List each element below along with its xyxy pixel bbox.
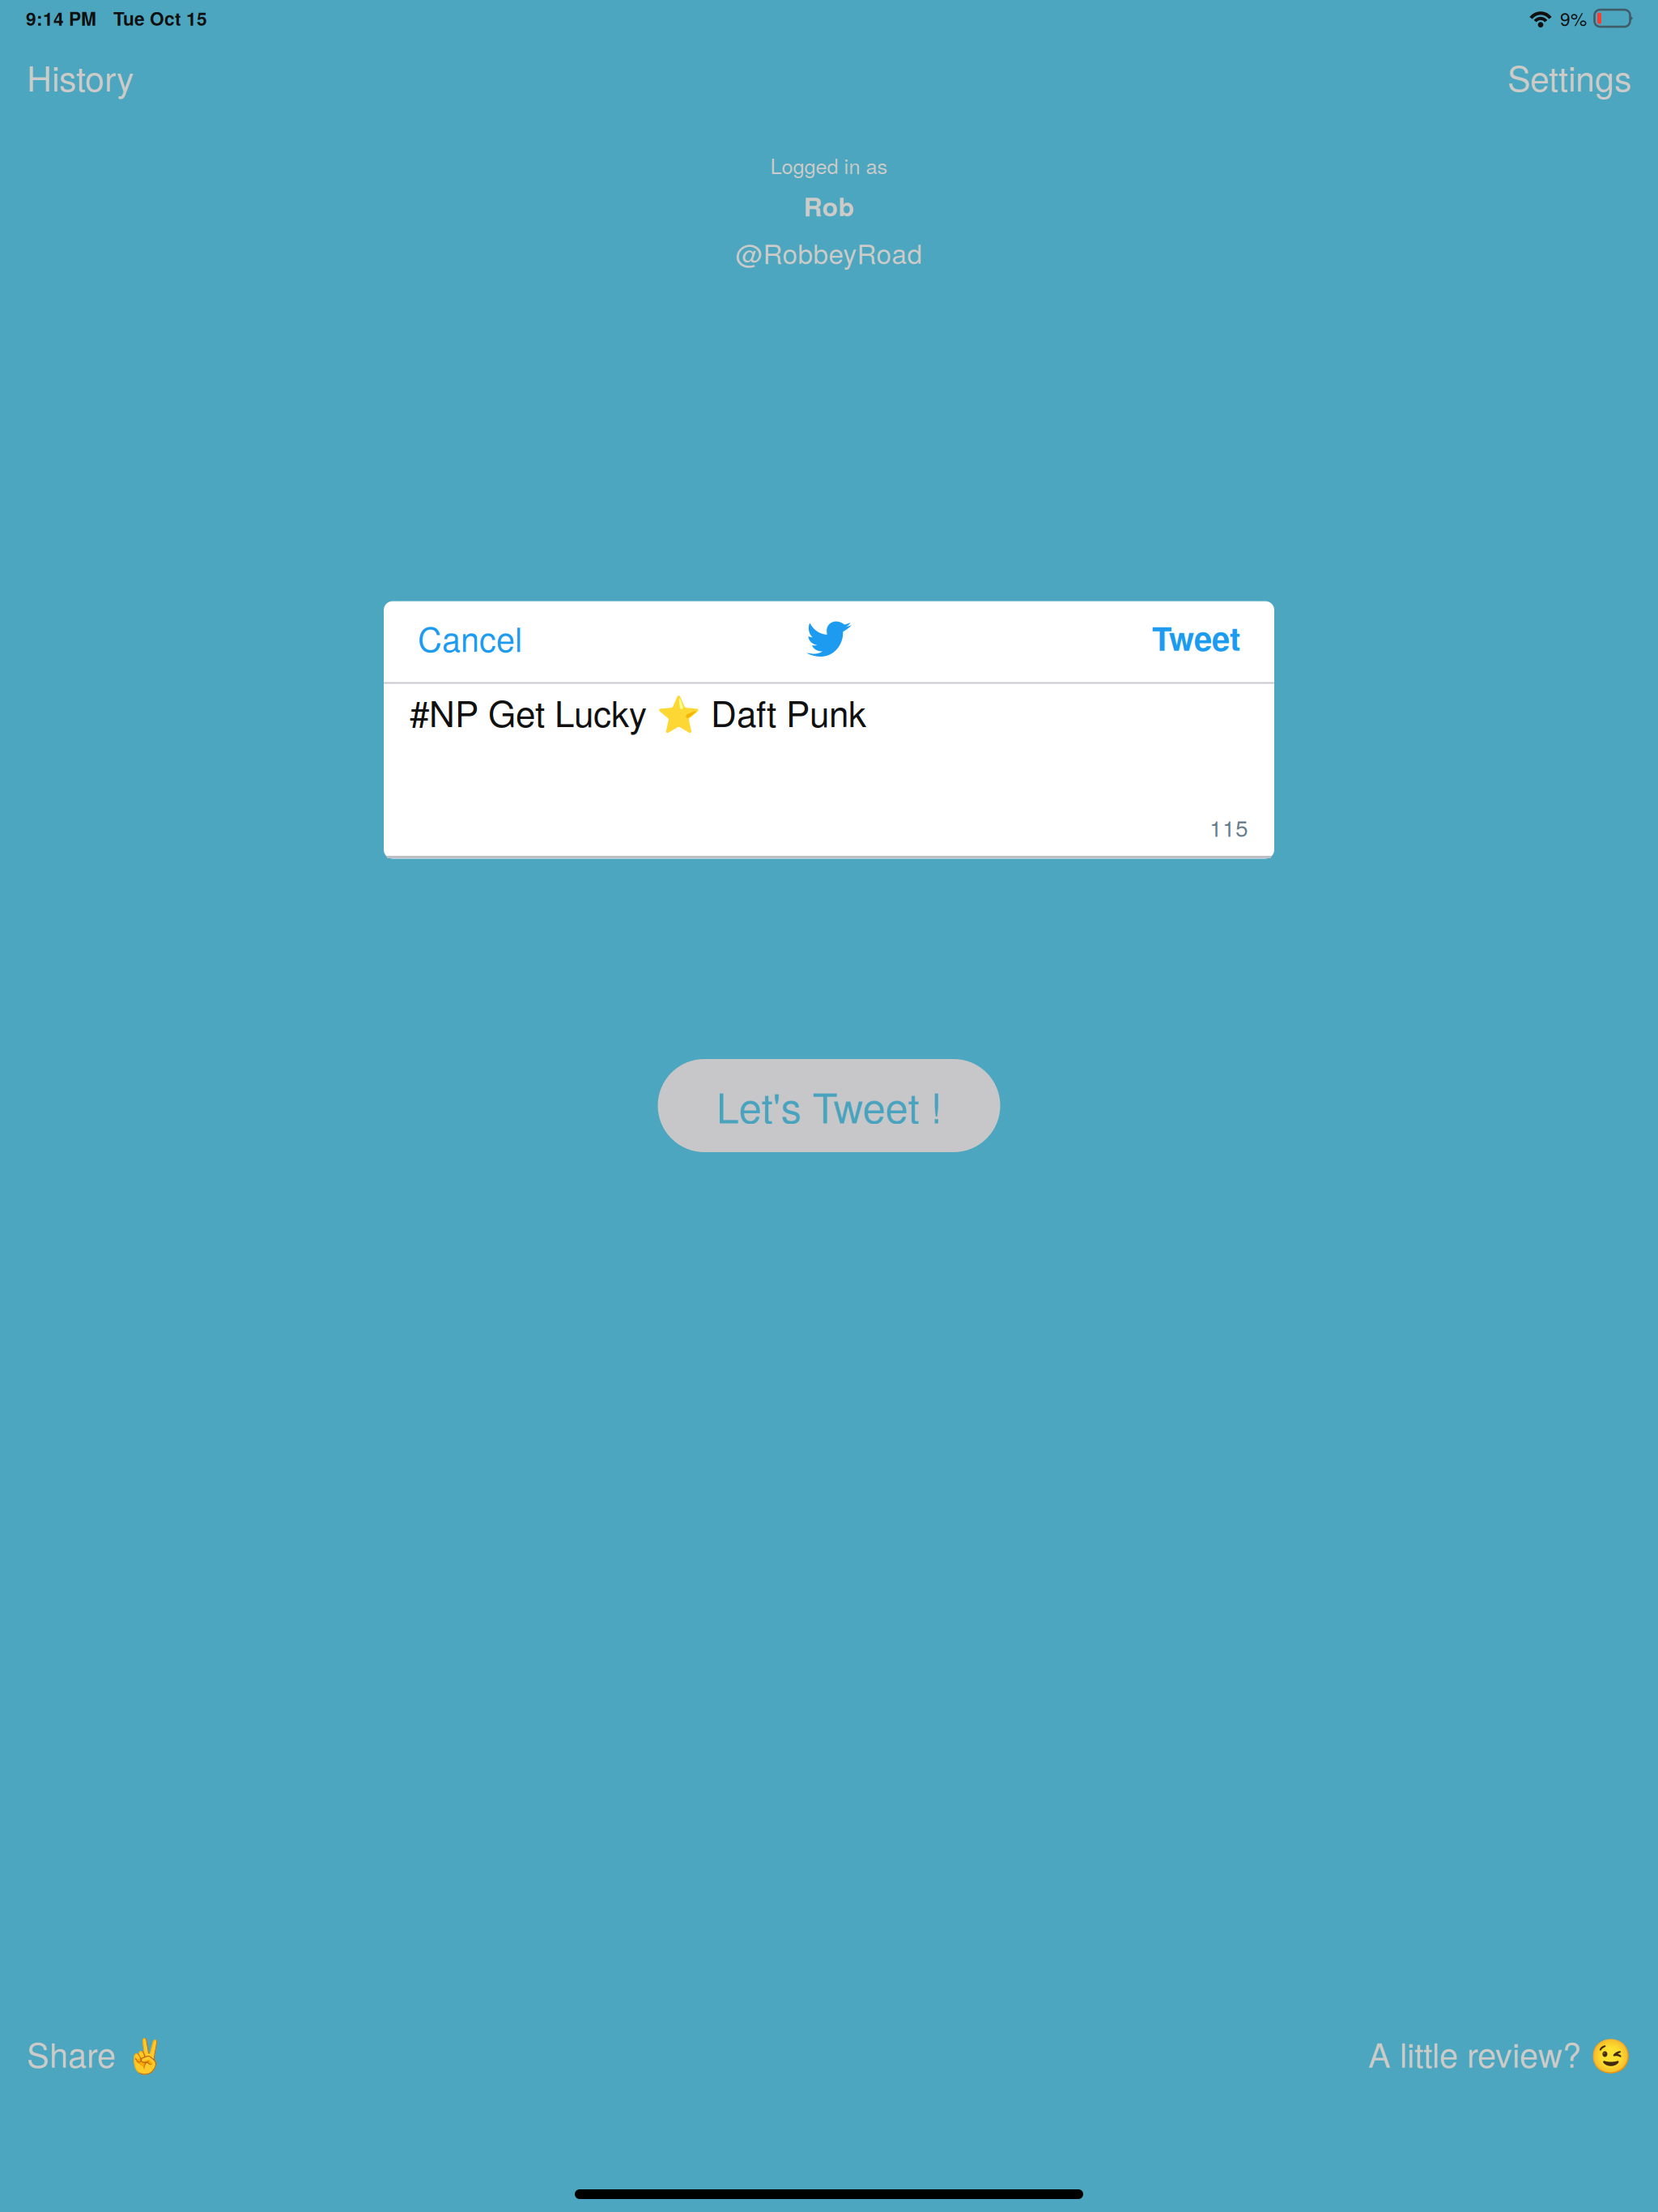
button[interactable]: Cancel (418, 614, 522, 662)
button[interactable]: Let's Tweet ! (658, 1059, 1000, 1152)
button[interactable]: A little review? 😉 (1368, 2029, 1631, 2077)
staticText: Share ✌️ (27, 2029, 166, 2077)
staticText: Tue Oct 15 (113, 5, 207, 31)
button[interactable]: Settings (1507, 52, 1631, 101)
staticText: Logged in as (770, 151, 888, 180)
staticText: History (27, 52, 134, 101)
staticText: Settings (1507, 52, 1631, 101)
button[interactable]: Tweet (1152, 614, 1240, 661)
staticText: @RobbeyRoad (735, 233, 923, 272)
button[interactable]: Share ✌️ (27, 2029, 166, 2077)
staticText: Cancel (418, 614, 522, 662)
staticText: A little review? 😉 (1368, 2029, 1631, 2077)
staticText: Rob (803, 187, 855, 224)
staticText: 9:14 PM (26, 5, 96, 31)
button[interactable]: History (27, 52, 134, 101)
staticText: Let's Tweet ! (716, 1076, 942, 1135)
staticText: 9% (1560, 5, 1587, 31)
staticText: #NP Get Lucky ⭐ Daft Punk (410, 686, 866, 737)
staticText: 115 (1209, 811, 1248, 843)
staticText: Tweet (1152, 614, 1240, 661)
